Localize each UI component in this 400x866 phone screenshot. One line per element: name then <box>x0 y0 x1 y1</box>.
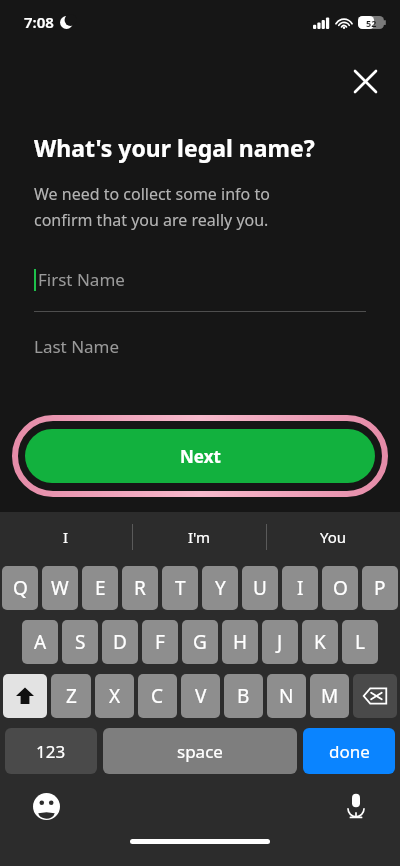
staticText: C <box>151 683 164 709</box>
button[interactable]: Next <box>12 415 388 497</box>
staticText: A <box>34 629 47 655</box>
staticText: What's your legal name? <box>34 132 315 163</box>
staticText: I'm <box>188 527 211 547</box>
button[interactable]: F <box>142 620 178 664</box>
staticText: B <box>237 683 250 709</box>
button[interactable]: You <box>267 512 400 562</box>
button[interactable]: U <box>242 566 278 610</box>
button[interactable]: I <box>282 566 318 610</box>
button[interactable]: space <box>103 728 297 774</box>
staticText: I <box>63 527 69 547</box>
staticText: First Name <box>38 268 125 291</box>
button[interactable]: M <box>310 674 349 718</box>
staticText: Last Name <box>34 335 120 358</box>
staticText: L <box>355 629 365 655</box>
staticText: D <box>113 629 127 655</box>
staticText: 123 <box>36 740 66 763</box>
button[interactable]: I <box>0 512 132 562</box>
button[interactable]: G <box>182 620 218 664</box>
button[interactable]: K <box>302 620 338 664</box>
button[interactable]: Backspace <box>353 674 397 718</box>
staticText: N <box>279 683 294 709</box>
staticText: Z <box>66 683 77 709</box>
staticText: X <box>109 683 121 709</box>
button[interactable]: O <box>322 566 358 610</box>
button[interactable]: P <box>362 566 398 610</box>
button[interactable]: S <box>62 620 98 664</box>
button[interactable]: J <box>262 620 298 664</box>
button[interactable]: Y <box>202 566 238 610</box>
button[interactable]: L <box>342 620 378 664</box>
staticText: T <box>175 575 186 601</box>
button[interactable]: Voice input <box>336 786 376 826</box>
button[interactable]: Z <box>51 674 91 718</box>
button[interactable]: N <box>267 674 306 718</box>
button[interactable]: Close <box>345 61 385 101</box>
staticText: We need to collect some info to confirm … <box>34 183 270 231</box>
button[interactable]: 123 <box>5 728 97 774</box>
staticText: O <box>333 575 348 601</box>
staticText: P <box>374 575 386 601</box>
staticText: S <box>75 629 86 655</box>
staticText: done <box>329 740 370 763</box>
staticText: G <box>193 629 207 655</box>
staticText: K <box>314 629 326 655</box>
button[interactable]: R <box>122 566 158 610</box>
staticText: H <box>233 629 248 655</box>
staticText: M <box>321 683 339 709</box>
staticText: V <box>195 683 207 709</box>
button[interactable]: A <box>22 620 58 664</box>
button[interactable]: Q <box>2 566 38 610</box>
staticText: 52 <box>366 17 377 29</box>
button[interactable]: I'm <box>133 512 266 562</box>
staticText: space <box>177 740 223 763</box>
button[interactable]: B <box>224 674 263 718</box>
staticText: 7:08 <box>24 12 54 32</box>
button[interactable]: V <box>181 674 220 718</box>
button[interactable]: done <box>303 728 395 774</box>
staticText: U <box>253 575 267 601</box>
staticText: E <box>95 575 106 601</box>
staticText: Q <box>13 575 28 601</box>
staticText: W <box>51 575 69 601</box>
button[interactable]: First Name <box>34 257 366 301</box>
button[interactable]: H <box>222 620 258 664</box>
staticText: I <box>297 575 304 601</box>
staticText: J <box>277 629 283 655</box>
staticText: You <box>320 527 347 547</box>
button[interactable]: Last Name <box>34 326 366 366</box>
button[interactable]: Emoji <box>26 786 66 826</box>
button[interactable]: Shift <box>3 674 47 718</box>
staticText: Next <box>180 445 221 468</box>
staticText: Y <box>215 575 226 601</box>
button[interactable]: C <box>138 674 177 718</box>
button[interactable]: T <box>162 566 198 610</box>
staticText: F <box>155 629 165 655</box>
button[interactable]: E <box>82 566 118 610</box>
button[interactable]: D <box>102 620 138 664</box>
staticText: R <box>134 575 146 601</box>
button[interactable]: W <box>42 566 78 610</box>
button[interactable]: X <box>95 674 134 718</box>
